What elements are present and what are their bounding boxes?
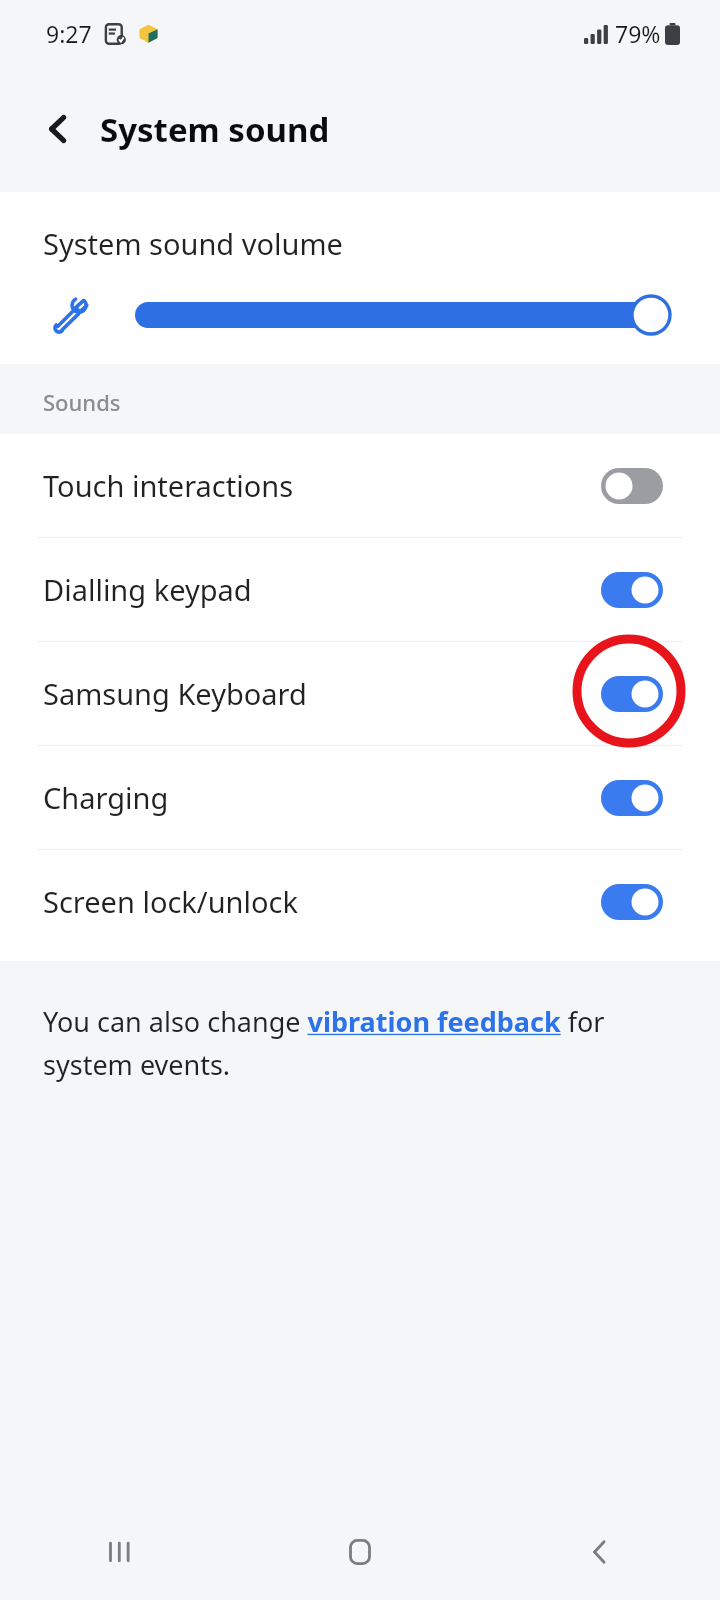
button[interactable]: Recents (0, 1504, 240, 1600)
button[interactable]: Charging (0, 746, 720, 849)
button[interactable]: Home (240, 1504, 480, 1600)
staticText: Touch interactions (43, 466, 294, 505)
button[interactable]: Dialling keypad (0, 538, 720, 641)
button[interactable]: Back (30, 101, 86, 157)
button[interactable]: You can also change vibration feedback f… (43, 1003, 660, 1083)
staticText: Sounds (43, 387, 121, 417)
staticText: 79% (615, 18, 661, 49)
staticText: Charging (43, 778, 169, 817)
staticText: Dialling keypad (43, 570, 252, 609)
button[interactable]: Samsung Keyboard (0, 642, 720, 745)
button[interactable]: System sound volume slider (135, 293, 672, 337)
button[interactable]: On (601, 780, 663, 816)
staticText: 9:27 (46, 18, 92, 49)
staticText: Samsung Keyboard (43, 674, 307, 713)
button[interactable]: Back (480, 1504, 720, 1600)
staticText: System sound volume (43, 224, 343, 263)
button[interactable]: On (601, 884, 663, 920)
staticText: Screen lock/unlock (43, 882, 298, 921)
button[interactable]: Screen lock/unlock (0, 850, 720, 953)
button[interactable]: Touch interactions (0, 434, 720, 537)
button[interactable]: On (601, 572, 663, 608)
staticText: System sound (100, 107, 330, 152)
button[interactable]: On (601, 676, 663, 712)
button[interactable]: Off (601, 468, 663, 504)
